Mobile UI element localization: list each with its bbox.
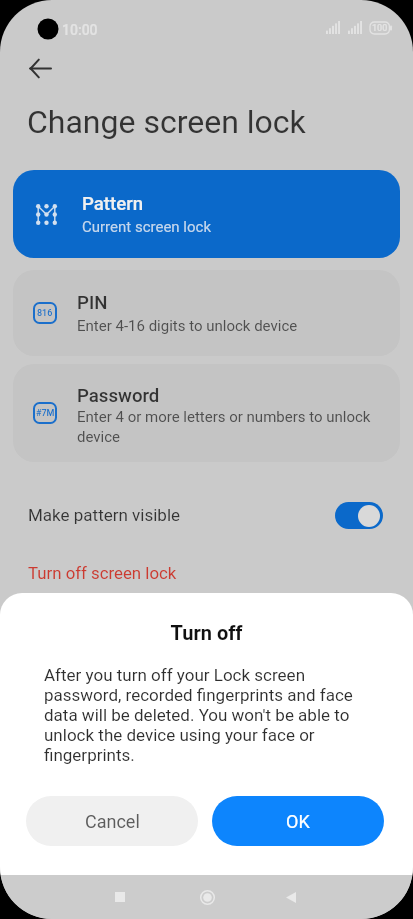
button[interactable]: Recents <box>98 875 142 919</box>
button[interactable]: Back <box>16 44 64 92</box>
staticText: 100 <box>372 23 388 34</box>
button[interactable]: #7M <box>13 364 400 462</box>
staticText: #7M <box>36 408 55 419</box>
button[interactable]: Make pattern visible <box>0 492 413 538</box>
staticText: Cancel <box>85 811 140 832</box>
staticText: Pattern <box>82 193 144 215</box>
staticText: After you turn off your Lock screen pass… <box>44 665 357 765</box>
button[interactable]: Home <box>185 875 229 919</box>
staticText: Turn off <box>0 621 413 644</box>
button[interactable]: 816 <box>13 270 400 356</box>
staticText: Password <box>77 385 160 407</box>
staticText: Make pattern visible <box>28 505 181 525</box>
button[interactable]: Turn off screen lock <box>0 556 413 590</box>
button[interactable]: Cancel <box>26 796 198 846</box>
staticText: Change screen lock <box>27 103 306 141</box>
staticText: OK <box>286 811 310 832</box>
staticText: Turn off screen lock <box>28 563 177 583</box>
button[interactable]: Back <box>269 875 313 919</box>
staticText: Enter 4-16 digits to unlock device <box>77 317 298 335</box>
staticText: PIN <box>77 292 108 314</box>
staticText: Current screen lock <box>82 218 212 236</box>
staticText: Enter 4 or more letters or numbers to un… <box>77 408 389 445</box>
staticText: 816 <box>37 308 53 319</box>
button[interactable]: Pattern <box>13 170 400 258</box>
staticText: 10:00 <box>62 22 98 38</box>
button[interactable]: OK <box>212 796 384 846</box>
